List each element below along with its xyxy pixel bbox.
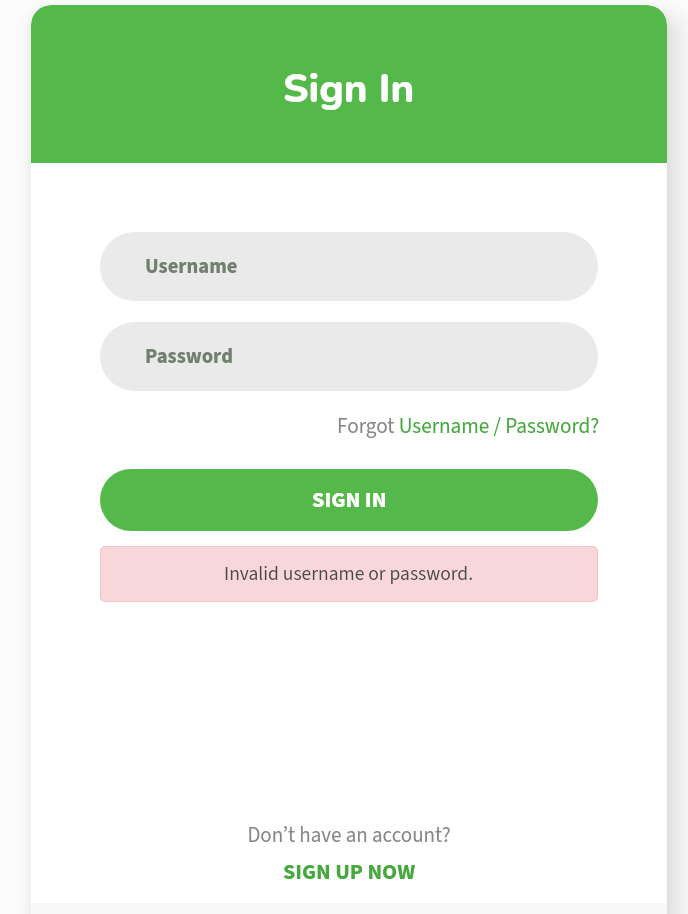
staticText: SIGN UP NOW	[283, 856, 416, 887]
staticText: Sign In	[283, 62, 415, 117]
staticText: Forgot Username / Password?	[337, 411, 600, 441]
staticText: Don’t have an account?	[31, 820, 667, 850]
staticText: Password	[145, 342, 233, 371]
staticText: Invalid username or password.	[224, 560, 474, 588]
button[interactable]: SIGN UP NOW	[31, 856, 667, 887]
staticText: SIGN IN	[312, 484, 387, 516]
button[interactable]: Password	[100, 322, 598, 391]
button[interactable]: Forgot Username / Password?	[337, 411, 600, 441]
button[interactable]: SIGN IN	[100, 469, 598, 531]
button[interactable]: Username	[100, 232, 598, 301]
staticText: Username	[145, 252, 238, 281]
